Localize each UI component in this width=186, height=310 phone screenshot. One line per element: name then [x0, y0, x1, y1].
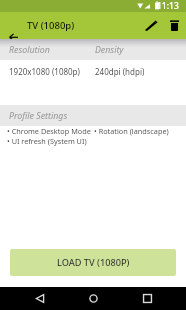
- button[interactable]: Back: [28, 287, 51, 310]
- staticText: • Chrome Desktop Mode: [7, 126, 91, 136]
- staticText: 11:13: [157, 0, 179, 12]
- staticText: • Rotation (landscape): [94, 126, 169, 136]
- staticText: Resolution: [9, 44, 95, 56]
- staticText: Density: [95, 44, 124, 56]
- button[interactable]: Recents: [136, 287, 159, 310]
- button[interactable]: Edit: [136, 12, 161, 39]
- button[interactable]: Back: [0, 12, 23, 39]
- staticText: 1920x1080 (1080p): [9, 66, 95, 77]
- staticText: 240dpi (hdpi): [95, 66, 145, 77]
- button[interactable]: Home: [82, 287, 105, 310]
- staticText: LOAD TV (1080P): [57, 256, 130, 269]
- staticText: TV (1080p): [27, 19, 75, 32]
- staticText: Profile Settings: [9, 110, 68, 122]
- button[interactable]: LOAD TV (1080P): [10, 249, 176, 276]
- staticText: • UI refresh (System UI): [7, 136, 87, 146]
- button[interactable]: Delete: [161, 12, 184, 39]
